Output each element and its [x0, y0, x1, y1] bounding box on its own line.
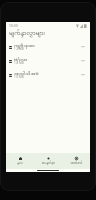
- button[interactable]: More options: [80, 72, 86, 78]
- button[interactable]: Library: [34, 153, 62, 169]
- staticText: ကျမ်းနာစာ: [14, 43, 35, 49]
- button[interactable]: ကျမ်းနာစာ: [6, 40, 90, 54]
- button[interactable]: အဘါသီအမ: [6, 68, 90, 82]
- button[interactable]: Settings: [62, 153, 90, 169]
- staticText: ဆက်တင်: [70, 161, 83, 165]
- staticText: 10:30: [9, 23, 18, 28]
- staticText: 1.8 MB: [14, 61, 24, 65]
- staticText: စာမျက်နှာ: [42, 161, 55, 165]
- staticText: အဘါသီအမ: [14, 71, 39, 77]
- staticText: မျက်နှာလွှာများ: [9, 30, 46, 38]
- button[interactable]: More options: [80, 58, 86, 64]
- button[interactable]: Home: [6, 153, 34, 169]
- button[interactable]: မင်္ဂလာ: [6, 54, 90, 68]
- staticText: မူလ: [17, 161, 23, 165]
- staticText: 1.0 MB: [14, 75, 24, 79]
- button[interactable]: More options: [80, 44, 86, 50]
- staticText: 1.2 MB: [14, 47, 24, 51]
- staticText: မင်္ဂလာ: [14, 57, 28, 63]
